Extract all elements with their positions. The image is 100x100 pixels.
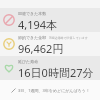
staticText: 延びた寿命: [18, 59, 39, 64]
other: Edit: [11, 88, 16, 93]
staticText: 16日0時間27分: [18, 65, 94, 80]
other: Cigarettes avoided: [3, 14, 15, 26]
staticText: ※税込価格で計算しています: [49, 36, 88, 40]
staticText: 節約できた金額: [18, 35, 47, 40]
staticText: 4,194本: [18, 17, 58, 32]
other: Money saved: [3, 38, 15, 50]
button[interactable]: Edit: [0, 80, 100, 100]
other: Life extended: [3, 62, 15, 74]
button[interactable]: Cigarettes avoided: [0, 8, 100, 32]
button[interactable]: Life extended: [0, 56, 100, 80]
staticText: 3日、1週間、3年をめどにがんばろう！: [18, 88, 90, 93]
staticText: 回避できた本数: [18, 11, 47, 16]
button[interactable]: Money saved: [0, 32, 100, 56]
staticText: 96,462円: [18, 41, 64, 56]
